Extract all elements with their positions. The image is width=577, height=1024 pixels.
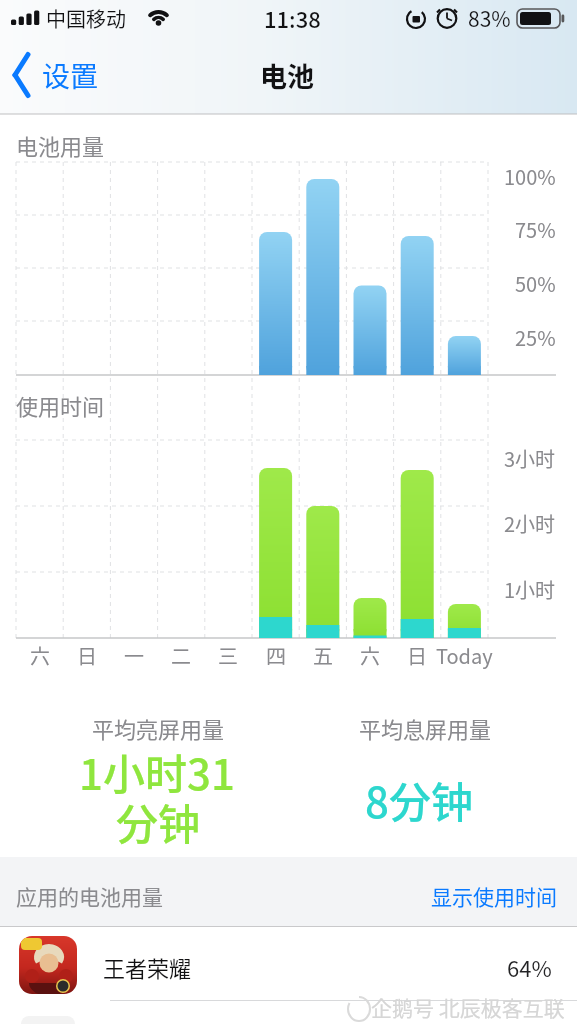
- staticText: 显示使用时间: [431, 881, 557, 911]
- staticText: 王者荣耀: [103, 951, 192, 983]
- staticText: 三: [218, 641, 238, 670]
- staticText: 75%: [515, 215, 556, 244]
- button[interactable]: 设置: [6, 53, 107, 97]
- staticText: 五: [313, 641, 333, 670]
- staticText: 设置: [42, 55, 99, 96]
- staticText: 电池: [260, 56, 314, 95]
- staticText: 83%: [468, 3, 511, 33]
- staticText: 使用时间: [16, 389, 105, 421]
- staticText: 100%: [504, 162, 556, 191]
- staticText: 50%: [515, 269, 556, 298]
- staticText: 一: [124, 641, 144, 670]
- button[interactable]: [0, 927, 577, 1000]
- staticText: 电池用量: [16, 129, 105, 161]
- staticText: 1小时31: [79, 741, 235, 801]
- staticText: 日: [407, 641, 427, 670]
- staticText: 分钟: [116, 791, 201, 851]
- staticText: 企鹅号 北辰极客互联: [371, 992, 565, 1022]
- staticText: 六: [360, 641, 380, 670]
- staticText: 1小时: [504, 575, 556, 604]
- staticText: 25%: [515, 323, 556, 352]
- staticText: 四: [266, 641, 286, 670]
- staticText: Today: [436, 641, 493, 670]
- staticText: 11:38: [264, 2, 321, 34]
- staticText: 平均息屏用量: [359, 712, 492, 744]
- staticText: 应用的电池用量: [16, 881, 163, 911]
- staticText: 二: [171, 641, 191, 670]
- staticText: 平均亮屏用量: [92, 712, 225, 744]
- staticText: 3小时: [504, 444, 556, 473]
- staticText: 日: [77, 641, 97, 670]
- staticText: 六: [30, 641, 50, 670]
- staticText: 64%: [507, 951, 552, 983]
- staticText: 8分钟: [365, 769, 473, 829]
- staticText: 2小时: [504, 509, 556, 538]
- staticText: 中国移动: [46, 4, 126, 33]
- button[interactable]: 显示使用时间: [357, 876, 557, 916]
